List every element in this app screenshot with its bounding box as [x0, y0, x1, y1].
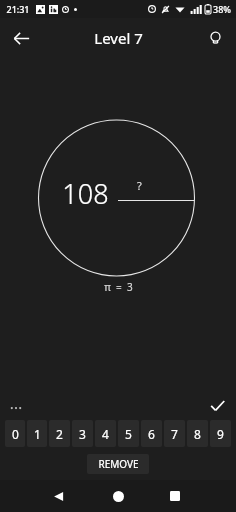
- button[interactable]: 2: [49, 420, 70, 447]
- staticText: 9: [217, 426, 224, 442]
- button[interactable]: 3: [72, 420, 93, 447]
- button[interactable]: 4: [95, 420, 116, 447]
- staticText: 108: [62, 175, 109, 212]
- button[interactable]: Home: [104, 482, 132, 510]
- button[interactable]: Confirm: [204, 392, 230, 418]
- button[interactable]: Hint: [198, 21, 232, 55]
- button[interactable]: 5: [118, 420, 139, 447]
- button[interactable]: 8: [187, 420, 208, 447]
- button[interactable]: 1: [27, 420, 47, 447]
- staticText: REMOVE: [98, 457, 139, 471]
- button[interactable]: REMOVE: [87, 454, 149, 474]
- staticText: 5: [125, 426, 132, 442]
- staticText: 4: [102, 426, 109, 442]
- button[interactable]: 9: [210, 420, 231, 447]
- staticText: Level 7: [94, 28, 143, 48]
- staticText: ?: [137, 178, 142, 193]
- button[interactable]: 7: [164, 420, 185, 447]
- staticText: 3: [79, 426, 86, 442]
- button[interactable]: Back: [44, 482, 72, 510]
- staticText: 6: [148, 426, 155, 442]
- button[interactable]: More options: [4, 393, 28, 417]
- staticText: 7: [171, 426, 178, 442]
- button[interactable]: 6: [141, 420, 162, 447]
- button[interactable]: 0: [5, 420, 25, 447]
- staticText: 21:31: [6, 3, 30, 15]
- staticText: 38%: [213, 3, 231, 15]
- button[interactable]: Back: [4, 21, 38, 55]
- button[interactable]: Recent apps: [161, 482, 189, 510]
- staticText: 2: [56, 426, 63, 442]
- staticText: 8: [194, 426, 201, 442]
- staticText: 1: [34, 426, 41, 442]
- staticText: π = 3: [104, 280, 133, 294]
- staticText: 0: [12, 426, 19, 442]
